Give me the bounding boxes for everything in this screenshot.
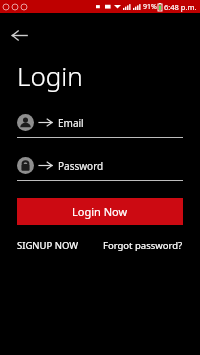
staticText: SIGNUP NOW	[17, 239, 79, 252]
staticText: Email	[58, 116, 84, 130]
staticText: Login Now	[72, 204, 128, 219]
button[interactable]: Password	[17, 155, 183, 181]
staticText: 91%	[143, 2, 157, 12]
staticText: Password	[58, 159, 104, 173]
button[interactable]: Login Now	[17, 198, 183, 225]
button[interactable]: Email	[17, 112, 183, 138]
button[interactable]: Forgot password?	[103, 239, 183, 252]
button[interactable]: Back	[4, 20, 34, 50]
staticText: Forgot password?	[103, 239, 183, 252]
staticText: 6:48 p.m.	[164, 2, 197, 12]
staticText: Login	[17, 58, 83, 93]
button[interactable]: SIGNUP NOW	[17, 239, 79, 252]
